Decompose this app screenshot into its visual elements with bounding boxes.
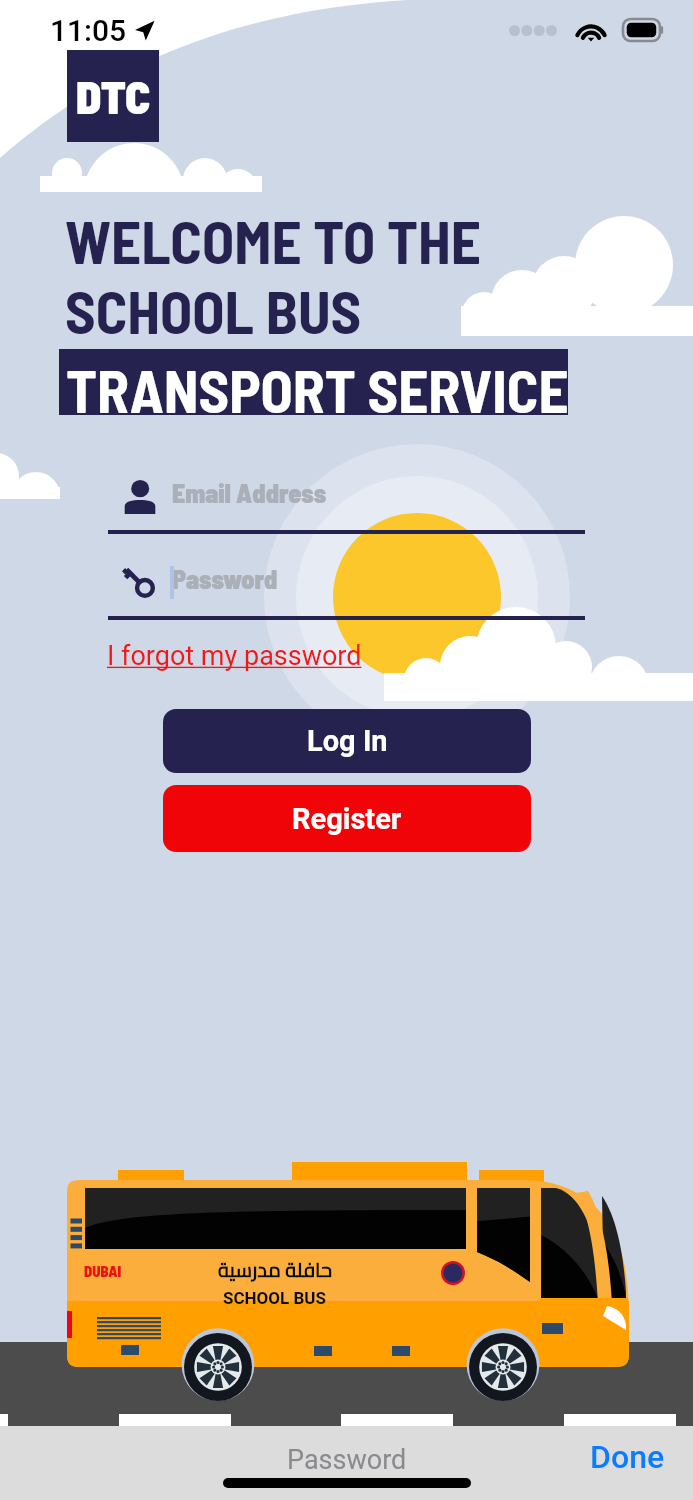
staticText: SCHOOL BUS: [223, 1288, 327, 1308]
staticText: 11:05: [50, 13, 127, 48]
button[interactable]: Register: [163, 785, 531, 852]
staticText: Password: [172, 563, 278, 594]
staticText: DUBAI: [84, 1262, 122, 1280]
button[interactable]: Email Address: [107, 474, 585, 534]
button[interactable]: Password: [107, 560, 585, 620]
staticText: Email Address: [172, 477, 327, 508]
button[interactable]: I forgot my password: [107, 640, 362, 672]
staticText: Password: [287, 1444, 407, 1476]
other: Email Address: [122, 480, 158, 514]
staticText: Register: [292, 802, 402, 836]
staticText: حافلة مدرسية: [218, 1251, 333, 1288]
staticText: I forgot my password: [107, 640, 362, 672]
button[interactable]: Log In: [163, 709, 531, 773]
other: Password: [118, 562, 160, 602]
button[interactable]: Done: [590, 1438, 665, 1476]
staticText: WELCOME TO THE: [65, 205, 481, 276]
staticText: Log In: [307, 724, 388, 758]
staticText: SCHOOL BUS: [65, 275, 362, 346]
staticText: DTC: [76, 68, 151, 123]
other: DTC logo: [67, 50, 159, 142]
staticText: Done: [590, 1438, 665, 1476]
staticText: TRANSPORT SERVICE: [66, 354, 569, 420]
